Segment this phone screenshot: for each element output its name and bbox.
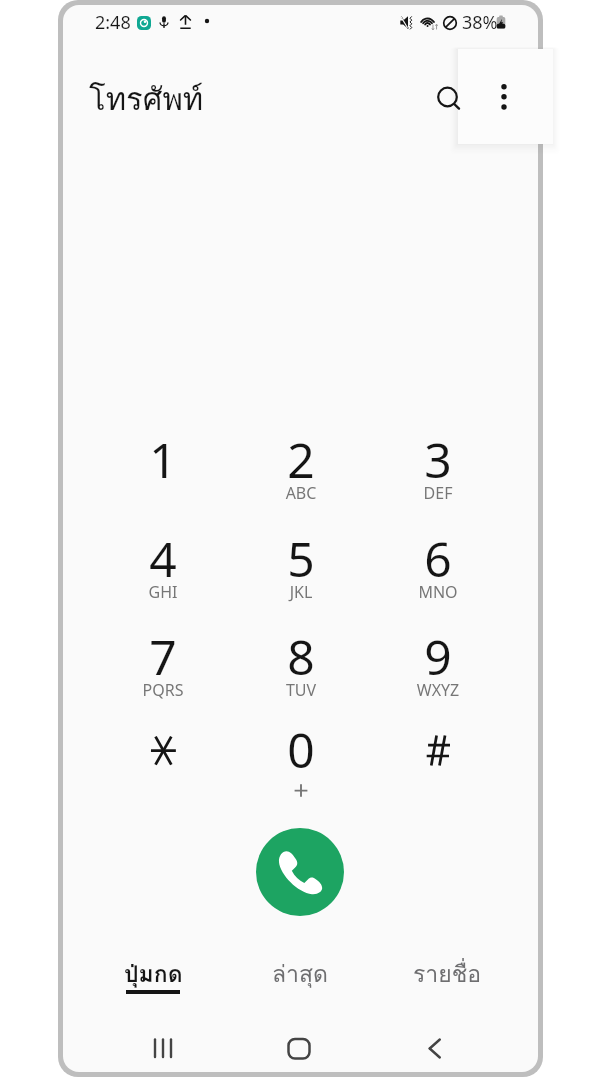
staticText: 8 [241, 624, 361, 689]
button[interactable]: Back [407, 1020, 463, 1072]
staticText: รายชื่อ [413, 956, 482, 993]
button[interactable]: Search [425, 75, 473, 123]
button[interactable]: Call [256, 828, 344, 916]
staticText: โทรศัพท์ [89, 74, 204, 123]
button[interactable]: Key 9 [378, 624, 498, 722]
button[interactable]: Key 1 [103, 427, 223, 525]
staticText: ปุ่มกด [124, 956, 183, 993]
button[interactable]: Key 2 [241, 427, 361, 525]
staticText: DEF [378, 482, 498, 504]
staticText: ABC [241, 482, 361, 504]
button[interactable]: ปุ่มกด [83, 950, 223, 1002]
staticText: 2:48 [95, 10, 131, 35]
staticText: 1 [103, 427, 223, 492]
button[interactable]: Key 6 [378, 526, 498, 624]
staticText: 6 [378, 526, 498, 591]
button[interactable]: Key * [103, 717, 223, 815]
button[interactable]: Key 4 [103, 526, 223, 624]
button[interactable]: Key # [378, 717, 498, 815]
staticText: WXYZ [378, 679, 498, 701]
staticText: 9 [378, 624, 498, 689]
button[interactable]: Key 5 [241, 526, 361, 624]
button[interactable]: Recents [135, 1020, 191, 1072]
button[interactable]: Key 7 [103, 624, 223, 722]
button[interactable]: รายชื่อ [377, 950, 517, 1002]
staticText: 2 [241, 427, 361, 492]
staticText: 4 [103, 526, 223, 591]
staticText: PQRS [103, 679, 223, 701]
button[interactable]: Key 3 [378, 427, 498, 525]
button[interactable]: More options [458, 49, 553, 144]
staticText: 5 [241, 526, 361, 591]
button[interactable]: ล่าสุด [230, 950, 370, 1002]
button[interactable]: Key 0 [241, 717, 361, 815]
staticText: MNO [378, 581, 498, 603]
button[interactable]: Key 8 [241, 624, 361, 722]
staticText: TUV [241, 679, 361, 701]
staticText: 7 [103, 624, 223, 689]
staticText: 3 [378, 427, 498, 492]
staticText: JKL [241, 581, 361, 603]
button[interactable]: Home [271, 1020, 327, 1072]
staticText: 0 [241, 717, 361, 782]
staticText: GHI [103, 581, 223, 603]
staticText: ล่าสุด [272, 956, 328, 993]
staticText: 38% [462, 10, 498, 35]
